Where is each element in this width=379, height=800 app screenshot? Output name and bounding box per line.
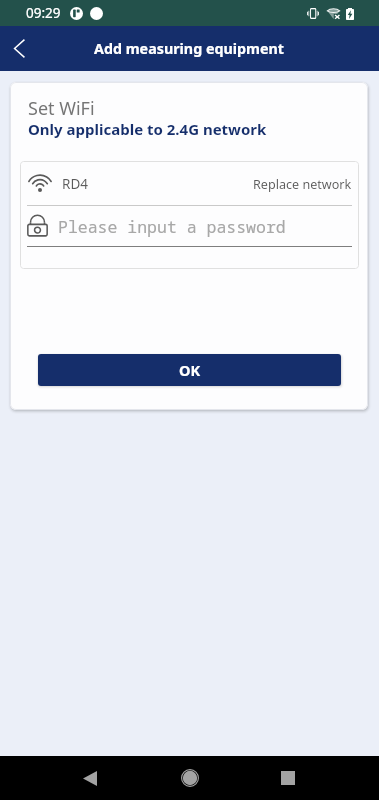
button[interactable]: Back <box>0 26 42 71</box>
staticText: Only applicable to 2.4G network <box>28 119 267 139</box>
button[interactable]: Replace network <box>253 175 352 192</box>
staticText: RD4 <box>62 175 88 193</box>
staticText: Add measuring equipment <box>94 39 285 58</box>
button[interactable]: Back <box>66 756 114 800</box>
staticText: OK <box>179 360 201 380</box>
button[interactable]: Home <box>166 756 214 800</box>
button[interactable]: Recent apps <box>264 756 312 800</box>
button[interactable]: OK <box>38 354 341 386</box>
staticText: 09:29 <box>26 4 61 22</box>
staticText: Replace network <box>253 176 352 193</box>
staticText: Please input a password <box>58 215 286 237</box>
button[interactable]: RD4 <box>27 161 352 205</box>
staticText: Set WiFi <box>28 96 95 121</box>
